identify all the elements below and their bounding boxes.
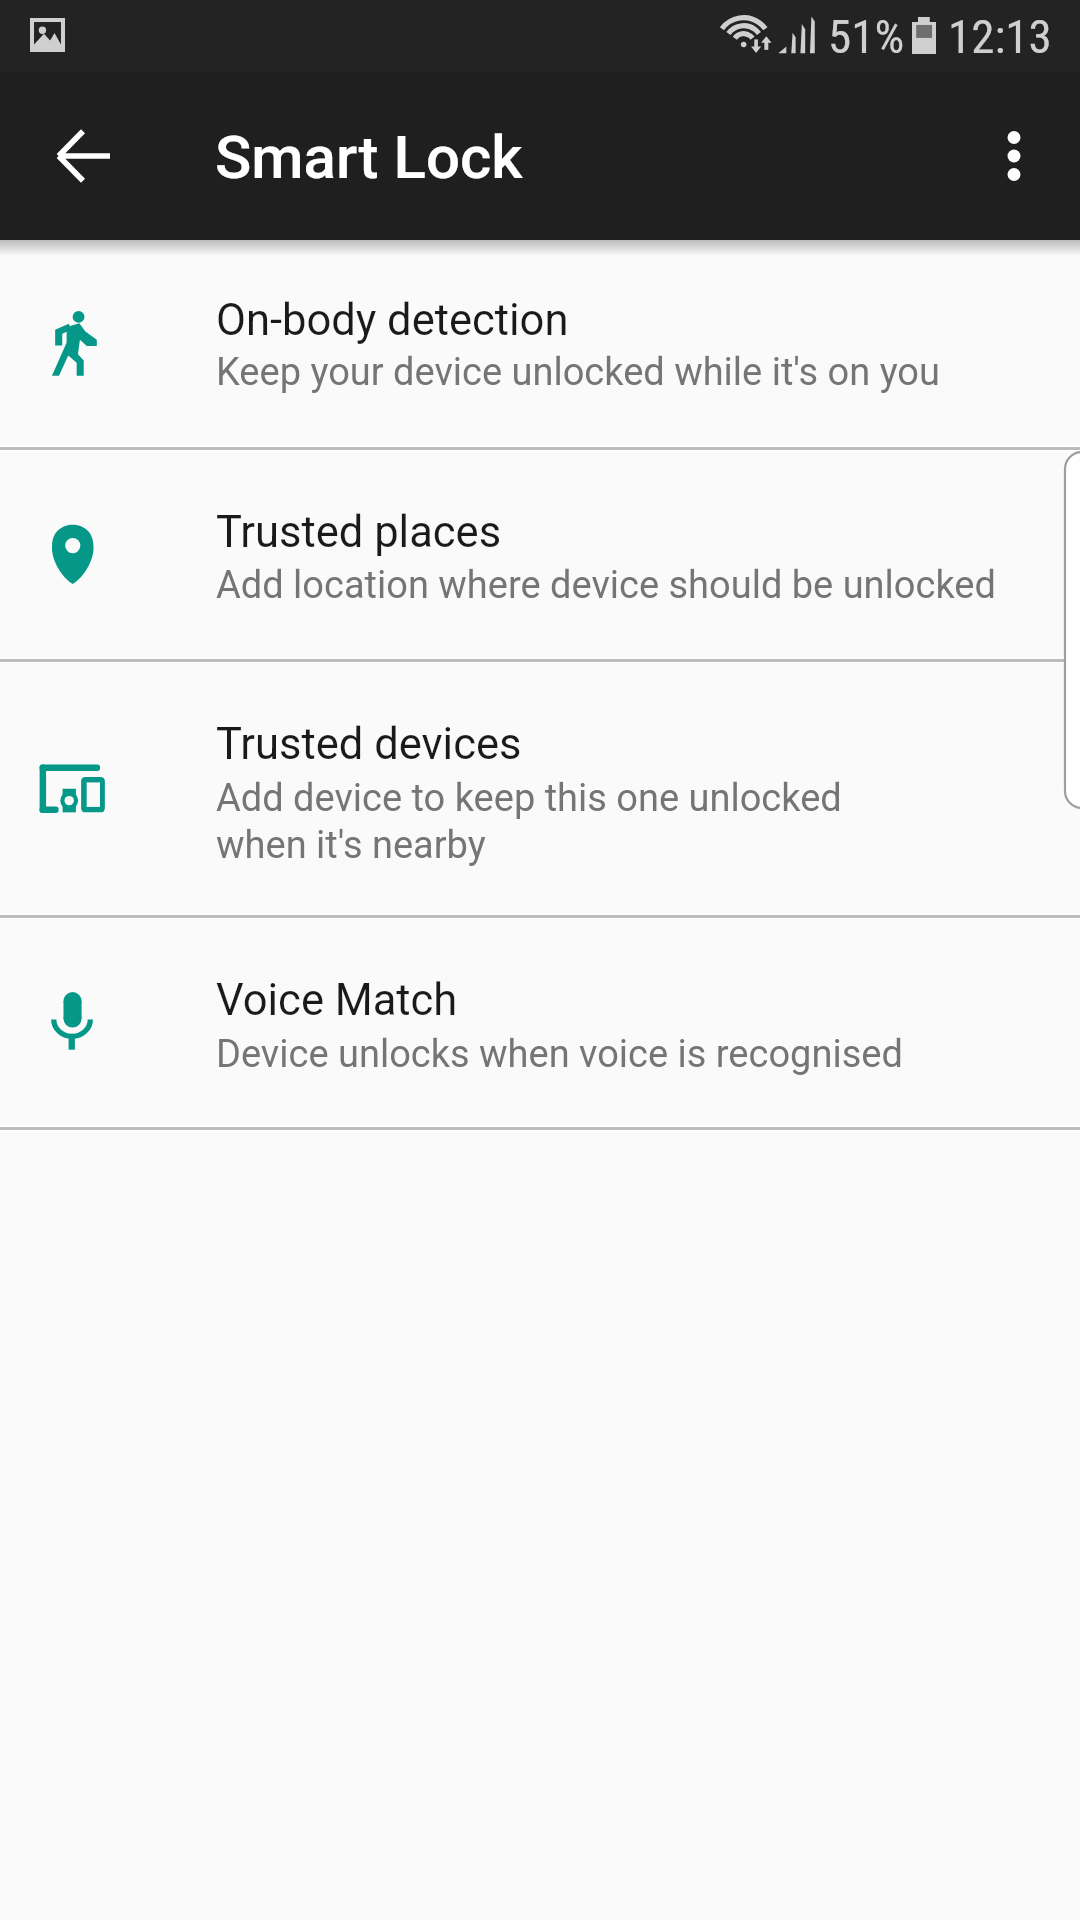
staticText: Keep your device unlocked while it's on … xyxy=(216,350,940,395)
button[interactable]: Trusted devices xyxy=(0,661,1080,915)
button[interactable]: On-body detection xyxy=(0,240,1080,447)
staticText: 51% xyxy=(828,9,905,64)
button[interactable]: Voice Match xyxy=(0,917,1080,1127)
staticText: Trusted places xyxy=(216,507,502,558)
staticText: Trusted devices xyxy=(216,719,522,770)
staticText: Voice Match xyxy=(216,975,458,1026)
staticText: Device unlocks when voice is recognised xyxy=(216,1032,903,1077)
button[interactable]: Trusted places xyxy=(0,449,1080,659)
staticText: 12:13 xyxy=(948,9,1052,64)
staticText: On-body detection xyxy=(216,295,569,346)
staticText: Smart Lock xyxy=(215,122,523,192)
staticText: Add location where device should be unlo… xyxy=(216,563,996,608)
button[interactable]: More options xyxy=(959,101,1069,211)
staticText: Add device to keep this one unlocked whe… xyxy=(216,776,842,867)
button[interactable]: Back xyxy=(28,101,138,211)
